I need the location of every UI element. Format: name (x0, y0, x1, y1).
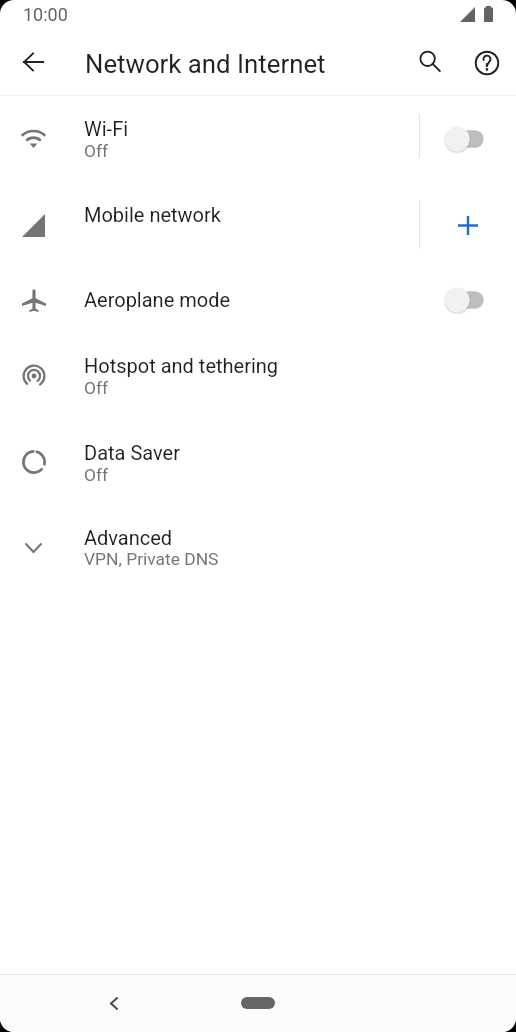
button[interactable]: Hotspot and tethering (0, 332, 516, 420)
staticText: Network and Internet (85, 49, 326, 79)
button[interactable]: Add network (436, 182, 500, 268)
staticText: Aeroplane mode (84, 288, 231, 311)
staticText: Off (84, 141, 109, 161)
button[interactable]: Navigate up (9, 38, 57, 86)
button[interactable]: Back (93, 983, 134, 1024)
staticText: Advanced (84, 526, 173, 549)
staticText: 10:00 (23, 4, 68, 25)
staticText: VPN, Private DNS (84, 549, 219, 569)
button[interactable]: Advanced (0, 506, 516, 590)
staticText: Wi-Fi (84, 117, 129, 140)
button[interactable]: Data Saver (0, 420, 516, 506)
button[interactable]: Wi-Fi (0, 96, 516, 182)
staticText: Hotspot and tethering (84, 354, 279, 377)
button[interactable]: Help (463, 39, 511, 87)
button[interactable]: Aeroplane mode toggle (432, 268, 494, 332)
staticText: Mobile network (84, 203, 221, 226)
button[interactable]: Wi-Fi toggle (432, 96, 494, 182)
staticText: Off (84, 378, 109, 398)
button[interactable]: Home (241, 997, 275, 1009)
staticText: Data Saver (84, 441, 180, 464)
staticText: Off (84, 465, 109, 485)
button[interactable]: Mobile network (0, 182, 516, 268)
button[interactable]: Aeroplane mode (0, 268, 516, 332)
button[interactable]: Search (406, 38, 454, 86)
